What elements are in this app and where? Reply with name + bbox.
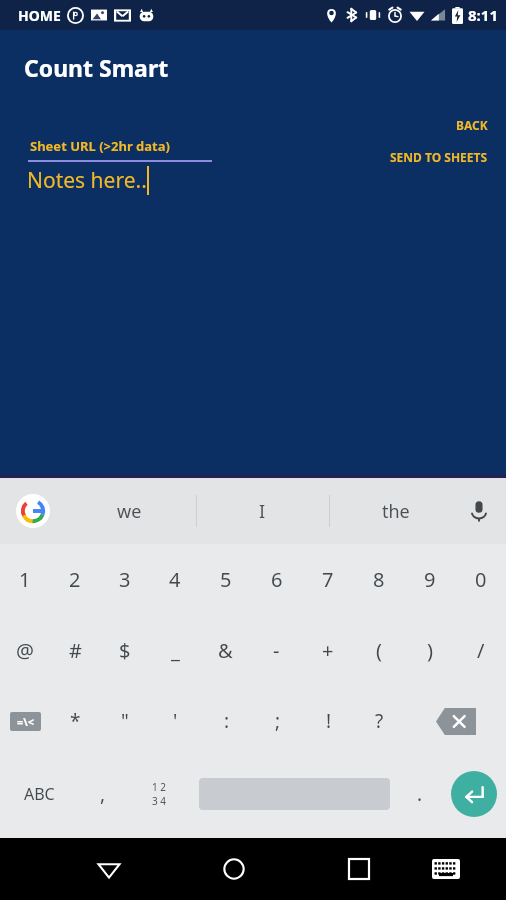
staticText: I: [259, 499, 266, 524]
staticText: &: [218, 637, 233, 664]
staticText: $: [119, 637, 131, 664]
staticText: SEND TO SHEETS: [390, 149, 488, 165]
staticText: Sheet URL (>2hr data): [30, 137, 170, 155]
button[interactable]: Symbols: [0, 686, 50, 756]
button[interactable]: (: [353, 615, 404, 686]
staticText: ): [427, 637, 433, 664]
button[interactable]: we: [62, 478, 196, 544]
staticText: !: [326, 708, 332, 734]
staticText: ,: [100, 781, 106, 807]
staticText: Count Smart: [24, 52, 169, 83]
staticText: (: [376, 637, 382, 664]
staticText: @: [16, 637, 34, 664]
staticText: /: [477, 637, 485, 664]
staticText: ': [173, 708, 178, 734]
button[interactable]: BACK: [450, 113, 494, 137]
button[interactable]: SEND TO SHEETS: [384, 145, 494, 169]
staticText: ABC: [24, 783, 55, 805]
staticText: 3 4: [152, 794, 167, 808]
staticText: 0: [475, 566, 487, 593]
staticText: 7: [322, 566, 334, 593]
button[interactable]: Space: [190, 756, 398, 832]
staticText: =\<: [17, 714, 35, 729]
staticText: 5: [220, 566, 232, 593]
button[interactable]: 7: [302, 544, 353, 615]
staticText: ": [121, 708, 129, 734]
button[interactable]: ;: [252, 686, 303, 756]
staticText: the: [382, 499, 410, 524]
button[interactable]: 2: [50, 544, 100, 615]
button[interactable]: 0: [455, 544, 506, 615]
button[interactable]: the: [329, 478, 462, 544]
button[interactable]: Home: [204, 838, 264, 900]
button[interactable]: ABC: [0, 756, 78, 832]
button[interactable]: Switch keyboard: [416, 838, 476, 900]
button[interactable]: /: [455, 615, 506, 686]
button[interactable]: @: [0, 615, 50, 686]
staticText: 3: [119, 566, 131, 593]
staticText: -: [273, 637, 280, 664]
button[interactable]: ': [150, 686, 201, 756]
staticText: 1: [19, 566, 31, 593]
staticText: _: [171, 637, 180, 664]
button[interactable]: Backspace: [405, 686, 506, 756]
staticText: Notes here..: [27, 166, 147, 195]
staticText: BACK: [456, 117, 488, 133]
button[interactable]: 6: [251, 544, 302, 615]
button[interactable]: Google: [16, 494, 50, 528]
button[interactable]: Back: [79, 838, 139, 900]
button[interactable]: ): [404, 615, 455, 686]
button[interactable]: *: [50, 686, 100, 756]
button[interactable]: _: [150, 615, 200, 686]
button[interactable]: +: [302, 615, 353, 686]
button[interactable]: Voice input: [462, 494, 496, 528]
staticText: 1 2: [152, 780, 167, 794]
button[interactable]: .: [398, 756, 442, 832]
button[interactable]: Recent apps: [329, 838, 389, 900]
staticText: 4: [169, 566, 181, 593]
staticText: .: [417, 781, 423, 807]
staticText: +: [322, 637, 334, 664]
button[interactable]: 8: [353, 544, 404, 615]
staticText: HOME: [18, 6, 61, 25]
staticText: 8:11: [468, 5, 498, 25]
staticText: 8: [373, 566, 385, 593]
button[interactable]: ,: [78, 756, 128, 832]
button[interactable]: $: [100, 615, 150, 686]
staticText: ;: [275, 708, 281, 734]
button[interactable]: Numbers: [128, 756, 190, 832]
staticText: 2: [69, 566, 81, 593]
button[interactable]: -: [251, 615, 302, 686]
button[interactable]: 1: [0, 544, 50, 615]
staticText: #: [69, 637, 82, 664]
button[interactable]: 9: [404, 544, 455, 615]
button[interactable]: 5: [200, 544, 251, 615]
button[interactable]: 4: [150, 544, 200, 615]
button[interactable]: !: [303, 686, 354, 756]
button[interactable]: ": [100, 686, 150, 756]
staticText: 6: [271, 566, 283, 593]
staticText: ?: [375, 708, 384, 734]
button[interactable]: Enter: [442, 756, 506, 832]
button[interactable]: ?: [354, 686, 405, 756]
button[interactable]: #: [50, 615, 100, 686]
staticText: 9: [424, 566, 436, 593]
staticText: :: [224, 708, 230, 734]
button[interactable]: 3: [100, 544, 150, 615]
button[interactable]: I: [196, 478, 329, 544]
button[interactable]: &: [200, 615, 251, 686]
staticText: we: [117, 499, 142, 524]
button[interactable]: :: [201, 686, 252, 756]
staticText: *: [70, 708, 81, 734]
